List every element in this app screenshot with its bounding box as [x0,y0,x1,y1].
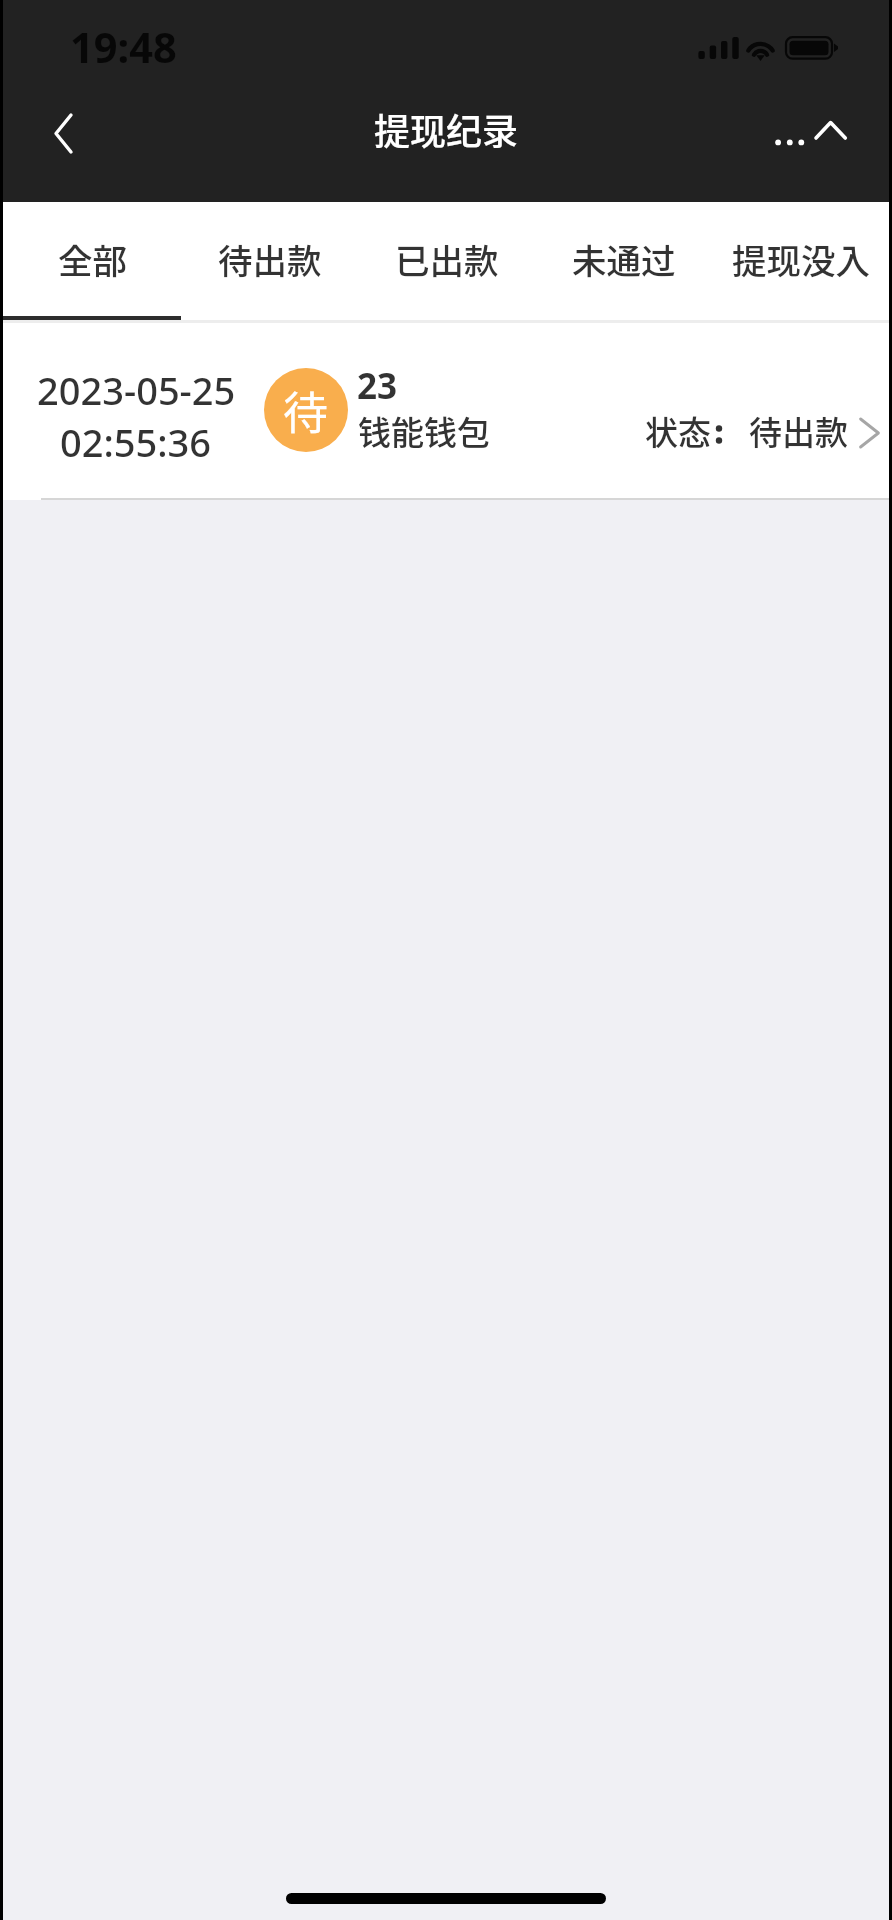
button[interactable]: 未通过 [535,202,712,323]
staticText: 2023-05-25 [37,364,236,416]
button[interactable]: 2023-05-25 [3,323,889,500]
staticText: 提现纪录 [374,103,519,155]
staticText: 全部 [58,234,127,284]
staticText: 提现没入 [732,234,870,284]
staticText: 钱能钱包 [358,407,490,455]
staticText: 待出款 [218,234,322,284]
button[interactable]: 提现没入 [712,202,889,323]
staticText: 23 [357,362,398,410]
button[interactable]: 已出款 [358,202,535,323]
button[interactable]: Back [25,95,101,171]
staticText: 未通过 [572,234,676,284]
button[interactable]: More options [757,107,825,179]
staticText: 已出款 [395,234,499,284]
staticText: 待出款 [749,407,848,455]
staticText: 状态 [645,407,711,455]
button[interactable]: 全部 [3,202,181,323]
button[interactable]: 待出款 [181,202,358,323]
staticText: 02:55:36 [60,416,212,468]
staticText: 待 [283,378,329,443]
staticText: 19:48 [70,19,177,76]
button[interactable]: Collapse [805,97,871,167]
